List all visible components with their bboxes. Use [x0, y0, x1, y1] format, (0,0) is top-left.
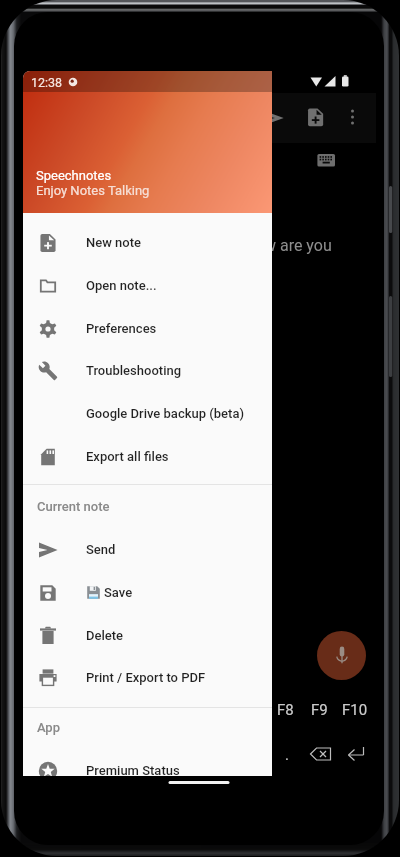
staticText: New note: [86, 235, 142, 250]
staticText: Preferences: [86, 321, 157, 336]
staticText: 12:38: [31, 75, 63, 90]
button[interactable]: Troubleshooting: [23, 349, 272, 392]
button[interactable]: Delete: [23, 614, 272, 657]
button[interactable]: Start dictation: [317, 631, 366, 680]
button[interactable]: New note: [23, 221, 272, 264]
staticText: Enjoy Notes Talking: [36, 183, 150, 198]
staticText: Premium Status: [86, 763, 180, 776]
button[interactable]: Print / Export to PDF: [23, 656, 272, 699]
button[interactable]: Send: [23, 528, 272, 571]
staticText: Open note...: [86, 278, 157, 293]
staticText: Troubleshooting: [86, 363, 182, 378]
staticText: Save: [104, 585, 133, 600]
staticText: .: [285, 746, 289, 764]
staticText: F10: [342, 701, 368, 719]
staticText: Send: [86, 542, 116, 557]
button[interactable]: Premium Status: [23, 749, 272, 776]
staticText: F9: [311, 701, 328, 719]
button[interactable]: Export all files: [23, 435, 272, 478]
staticText: Print / Export to PDF: [86, 670, 206, 685]
staticText: App: [37, 720, 60, 735]
staticText: Export all files: [86, 449, 169, 464]
staticText: Delete: [86, 628, 124, 643]
staticText: Current note: [37, 499, 110, 514]
button[interactable]: Preferences: [23, 307, 272, 350]
button[interactable]: Save: [23, 571, 272, 614]
staticText: Speechnotes: [36, 168, 112, 183]
button[interactable]: Open note...: [23, 264, 272, 307]
staticText: Google Drive backup (beta): [86, 406, 245, 421]
button[interactable]: Google Drive backup (beta): [23, 392, 272, 435]
staticText: how are you: [246, 236, 332, 255]
staticText: F8: [277, 701, 294, 719]
